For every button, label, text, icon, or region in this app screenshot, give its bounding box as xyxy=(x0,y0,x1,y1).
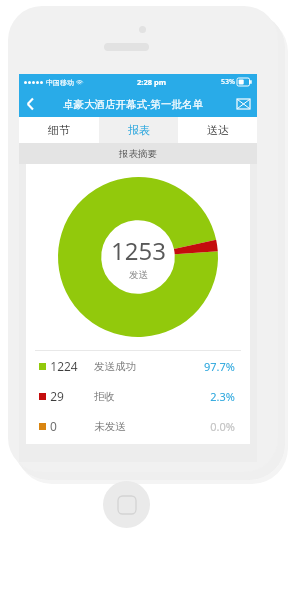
staticText: 细节 xyxy=(48,123,70,137)
button[interactable]: Mail xyxy=(229,90,257,117)
staticText: 1224 xyxy=(50,358,78,374)
staticText: 97.7% xyxy=(204,359,235,374)
button[interactable]: 细节 xyxy=(19,117,99,143)
staticText: 发送成功 xyxy=(94,360,136,373)
staticText: 1253 xyxy=(111,234,166,267)
button[interactable]: Back xyxy=(19,90,42,117)
staticText: 53% xyxy=(221,77,235,87)
button[interactable]: 0 xyxy=(26,411,250,441)
staticText: 2:28 pm xyxy=(137,77,166,87)
staticText: 中国移动 xyxy=(46,78,74,87)
staticText: 发送 xyxy=(129,269,148,281)
staticText: 卓豪大酒店开幕式-第一批名单 xyxy=(63,97,203,111)
staticText: 未发送 xyxy=(94,420,126,433)
staticText: 0.0% xyxy=(210,419,235,434)
button[interactable]: 29 xyxy=(26,381,250,411)
button[interactable]: 报表 xyxy=(99,117,178,143)
staticText: 2.3% xyxy=(210,389,235,404)
staticText: 报表 xyxy=(128,123,150,137)
staticText: 拒收 xyxy=(94,390,115,403)
staticText: 0 xyxy=(50,418,57,434)
staticText: 送达 xyxy=(207,123,229,137)
staticText: 报表摘要 xyxy=(119,148,157,160)
staticText: 29 xyxy=(50,388,64,404)
button[interactable]: 送达 xyxy=(178,117,257,143)
button[interactable]: 1224 xyxy=(26,351,250,381)
